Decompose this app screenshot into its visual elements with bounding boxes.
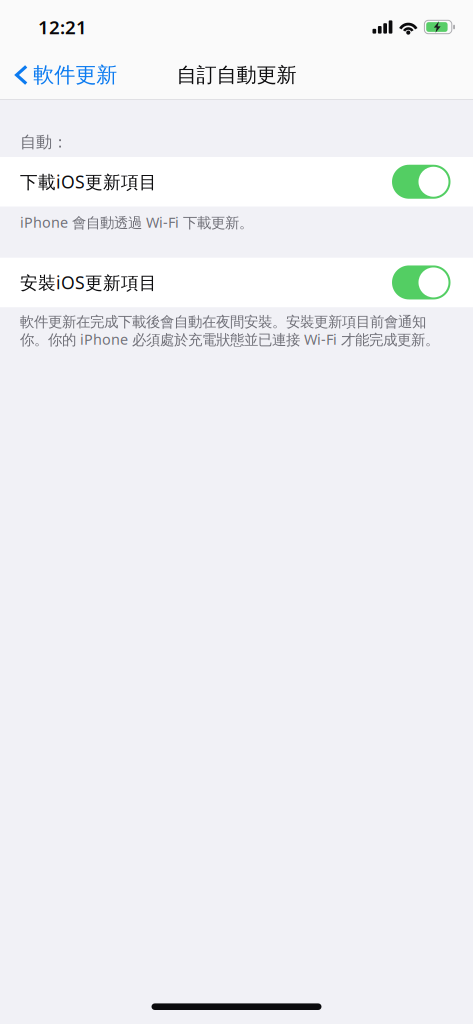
staticText: 自動： — [20, 132, 68, 152]
staticText: 軟件更新 — [33, 62, 117, 88]
staticText: 12:21 — [38, 15, 87, 39]
staticText: 安裝iOS更新項目 — [20, 271, 157, 294]
staticText: 軟件更新在完成下載後會自動在夜間安裝。安裝更新項目前會通知你。你的 iPhone… — [20, 313, 439, 349]
button[interactable]: 下載iOS更新項目 — [0, 157, 473, 206]
button[interactable]: 安裝iOS更新項目 — [0, 258, 473, 307]
button[interactable]: 軟件更新 — [0, 54, 127, 100]
staticText: 下載iOS更新項目 — [20, 170, 157, 193]
staticText: iPhone 會自動透過 Wi-Fi 下載更新。 — [20, 212, 253, 232]
staticText: 自訂自動更新 — [176, 63, 296, 87]
